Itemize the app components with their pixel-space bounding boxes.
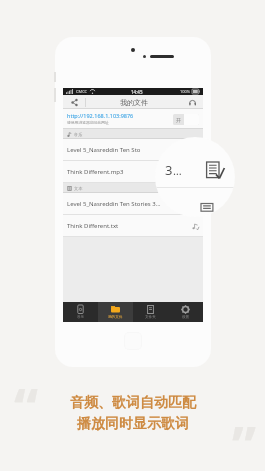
staticText: Think Different.txt	[67, 222, 119, 230]
staticText: ”	[232, 408, 257, 471]
staticText: 音乐	[74, 132, 83, 137]
staticText: 我的文件	[120, 98, 148, 107]
staticText: 请使用浏览器访问此网址	[67, 120, 109, 125]
button[interactable]: Share	[63, 95, 85, 109]
staticText: Level 5_Nasreddin Ten Sto	[67, 146, 141, 154]
staticText: 音乐	[77, 315, 85, 320]
button[interactable]: Level 5_Nasreddin Ten Sto	[63, 139, 203, 161]
button[interactable]: 开	[173, 114, 199, 125]
staticText: 开	[176, 117, 181, 123]
staticText: 文本	[74, 186, 83, 191]
staticText: 设置	[182, 315, 190, 320]
staticText: 100%	[180, 89, 191, 94]
staticText: 我的文件	[108, 315, 123, 320]
button[interactable]: Headphones	[181, 95, 203, 109]
staticText: 播放同时显示歌词	[77, 415, 189, 433]
button[interactable]: Level 5_Nasreddin Ten Stories 3…	[63, 193, 203, 215]
button[interactable]: Think Different.mp3	[63, 161, 203, 183]
button[interactable]: Think Different.txt	[63, 215, 203, 237]
button[interactable]: 文件夹	[133, 302, 168, 322]
staticText: 文件夹	[145, 315, 156, 320]
staticText: 音频、歌词自动匹配	[70, 394, 196, 412]
button[interactable]: 设置	[168, 302, 203, 322]
staticText: Level 5_Nasreddin Ten Stories 3…	[67, 200, 161, 208]
staticText: 14:45	[131, 89, 143, 95]
button[interactable]: 音乐	[63, 302, 98, 322]
staticText: Think Different.mp3	[67, 168, 124, 176]
staticText: …	[173, 163, 182, 178]
staticText: 3	[165, 161, 173, 179]
staticText: CMCC	[76, 89, 88, 94]
staticText: “	[14, 370, 39, 444]
staticText: http://192.168.1.103:9876	[67, 112, 134, 119]
button[interactable]: 我的文件	[98, 302, 133, 322]
